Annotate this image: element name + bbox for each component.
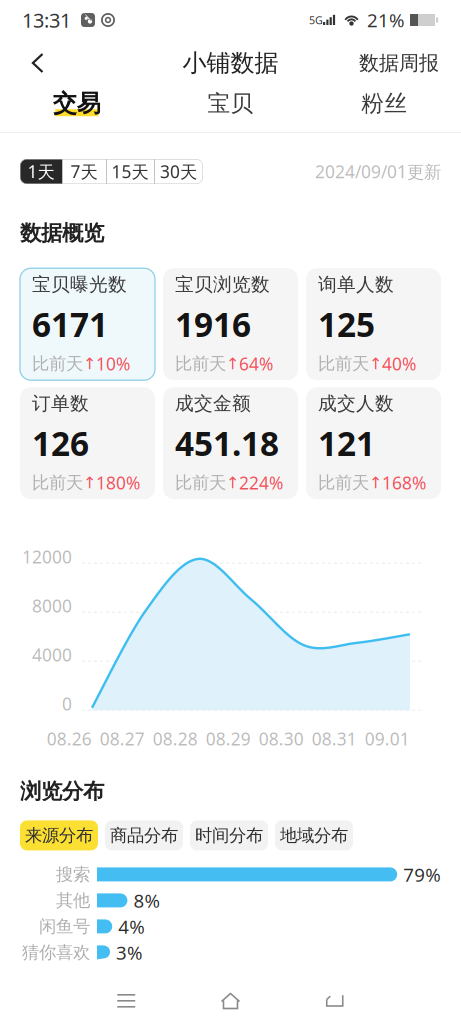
staticText: 来源分布 <box>25 825 93 846</box>
button[interactable]: Back <box>307 981 363 1021</box>
button[interactable]: 1天 <box>20 159 62 184</box>
staticText: 时间分布 <box>195 825 263 846</box>
staticText: 08.30 <box>259 727 304 750</box>
staticText: 12000 <box>22 545 72 568</box>
staticText: 180% <box>96 471 140 494</box>
staticText: 比前天 <box>32 353 83 374</box>
button[interactable]: 宝贝 <box>154 86 307 132</box>
staticText: 4000 <box>32 643 72 666</box>
staticText: 数据概览 <box>20 220 104 246</box>
button[interactable]: 宝贝浏览数 <box>163 268 298 380</box>
staticText: 成交金额 <box>175 392 251 415</box>
staticText: 8% <box>133 888 160 913</box>
staticText: 126 <box>32 421 89 465</box>
button[interactable]: 询单人数 <box>306 268 441 380</box>
staticText: 08.31 <box>312 727 357 750</box>
staticText: 地域分布 <box>280 825 348 846</box>
button[interactable]: 7天 <box>62 159 106 184</box>
staticText: 比前天 <box>318 353 369 374</box>
staticText: 猜你喜欢 <box>22 942 90 963</box>
staticText: 交易 <box>53 89 101 118</box>
button[interactable]: 成交人数 <box>306 387 441 499</box>
staticText: 小铺数据 <box>182 48 278 78</box>
staticText: 比前天 <box>175 472 226 493</box>
staticText: 224% <box>239 471 283 494</box>
staticText: 08.26 <box>47 727 92 750</box>
staticText: 1天 <box>27 160 54 183</box>
staticText: 比前天 <box>318 472 369 493</box>
staticText: 成交人数 <box>318 392 394 415</box>
staticText: 15天 <box>111 160 148 183</box>
staticText: 79% <box>403 862 441 887</box>
staticText: 40% <box>382 352 416 375</box>
staticText: 30天 <box>160 160 197 183</box>
button[interactable]: 商品分布 <box>105 820 183 850</box>
staticText: 1916 <box>175 302 251 346</box>
staticText: ↑ <box>83 355 96 373</box>
staticText: ↑ <box>226 355 239 373</box>
button[interactable]: 成交金额 <box>163 387 298 499</box>
staticText: 21% <box>367 8 405 32</box>
staticText: 订单数 <box>32 392 89 415</box>
staticText: ↑ <box>369 474 382 492</box>
staticText: 125 <box>318 302 375 346</box>
staticText: 4% <box>118 914 145 939</box>
button[interactable]: 30天 <box>154 159 203 184</box>
button[interactable]: 订单数 <box>20 387 155 499</box>
staticText: 粉丝 <box>361 90 407 117</box>
staticText: 询单人数 <box>318 273 394 296</box>
staticText: 宝贝浏览数 <box>175 273 270 296</box>
staticText: 3% <box>116 940 143 965</box>
staticText: 8000 <box>32 594 72 617</box>
button[interactable]: 粉丝 <box>307 86 461 132</box>
staticText: 0 <box>62 692 72 715</box>
staticText: 搜索 <box>56 864 90 885</box>
button[interactable]: 交易 <box>0 86 154 132</box>
staticText: 2024/09/01更新 <box>315 160 441 183</box>
staticText: 09.01 <box>365 727 410 750</box>
staticText: 13:31 <box>22 7 71 33</box>
staticText: ↑ <box>369 355 382 373</box>
button[interactable]: Home <box>202 981 258 1021</box>
button[interactable]: Recents <box>98 981 154 1021</box>
staticText: 10% <box>96 352 130 375</box>
staticText: 其他 <box>56 890 90 911</box>
staticText: 闲鱼号 <box>39 916 90 937</box>
button[interactable]: 宝贝曝光数 <box>20 268 155 380</box>
staticText: 宝贝 <box>207 90 253 117</box>
button[interactable]: Back <box>18 43 58 83</box>
staticText: 宝贝曝光数 <box>32 273 127 296</box>
staticText: 数据周报 <box>359 51 439 75</box>
staticText: 比前天 <box>175 353 226 374</box>
staticText: 7天 <box>70 160 97 183</box>
staticText: 168% <box>382 471 426 494</box>
staticText: 08.29 <box>206 727 251 750</box>
button[interactable]: 时间分布 <box>190 820 268 850</box>
staticText: 08.27 <box>100 727 145 750</box>
staticText: 商品分布 <box>110 825 178 846</box>
staticText: ↑ <box>83 474 96 492</box>
staticText: 451.18 <box>175 421 279 465</box>
staticText: 5G <box>309 13 323 27</box>
button[interactable]: 15天 <box>106 159 154 184</box>
staticText: 64% <box>239 352 273 375</box>
staticText: 浏览分布 <box>20 778 104 804</box>
button[interactable]: 来源分布 <box>20 820 98 850</box>
staticText: ↑ <box>226 474 239 492</box>
staticText: 6171 <box>32 302 108 346</box>
staticText: 121 <box>318 421 375 465</box>
button[interactable]: 数据周报 <box>355 43 443 83</box>
button[interactable]: 地域分布 <box>275 820 353 850</box>
staticText: 08.28 <box>153 727 198 750</box>
staticText: 比前天 <box>32 472 83 493</box>
